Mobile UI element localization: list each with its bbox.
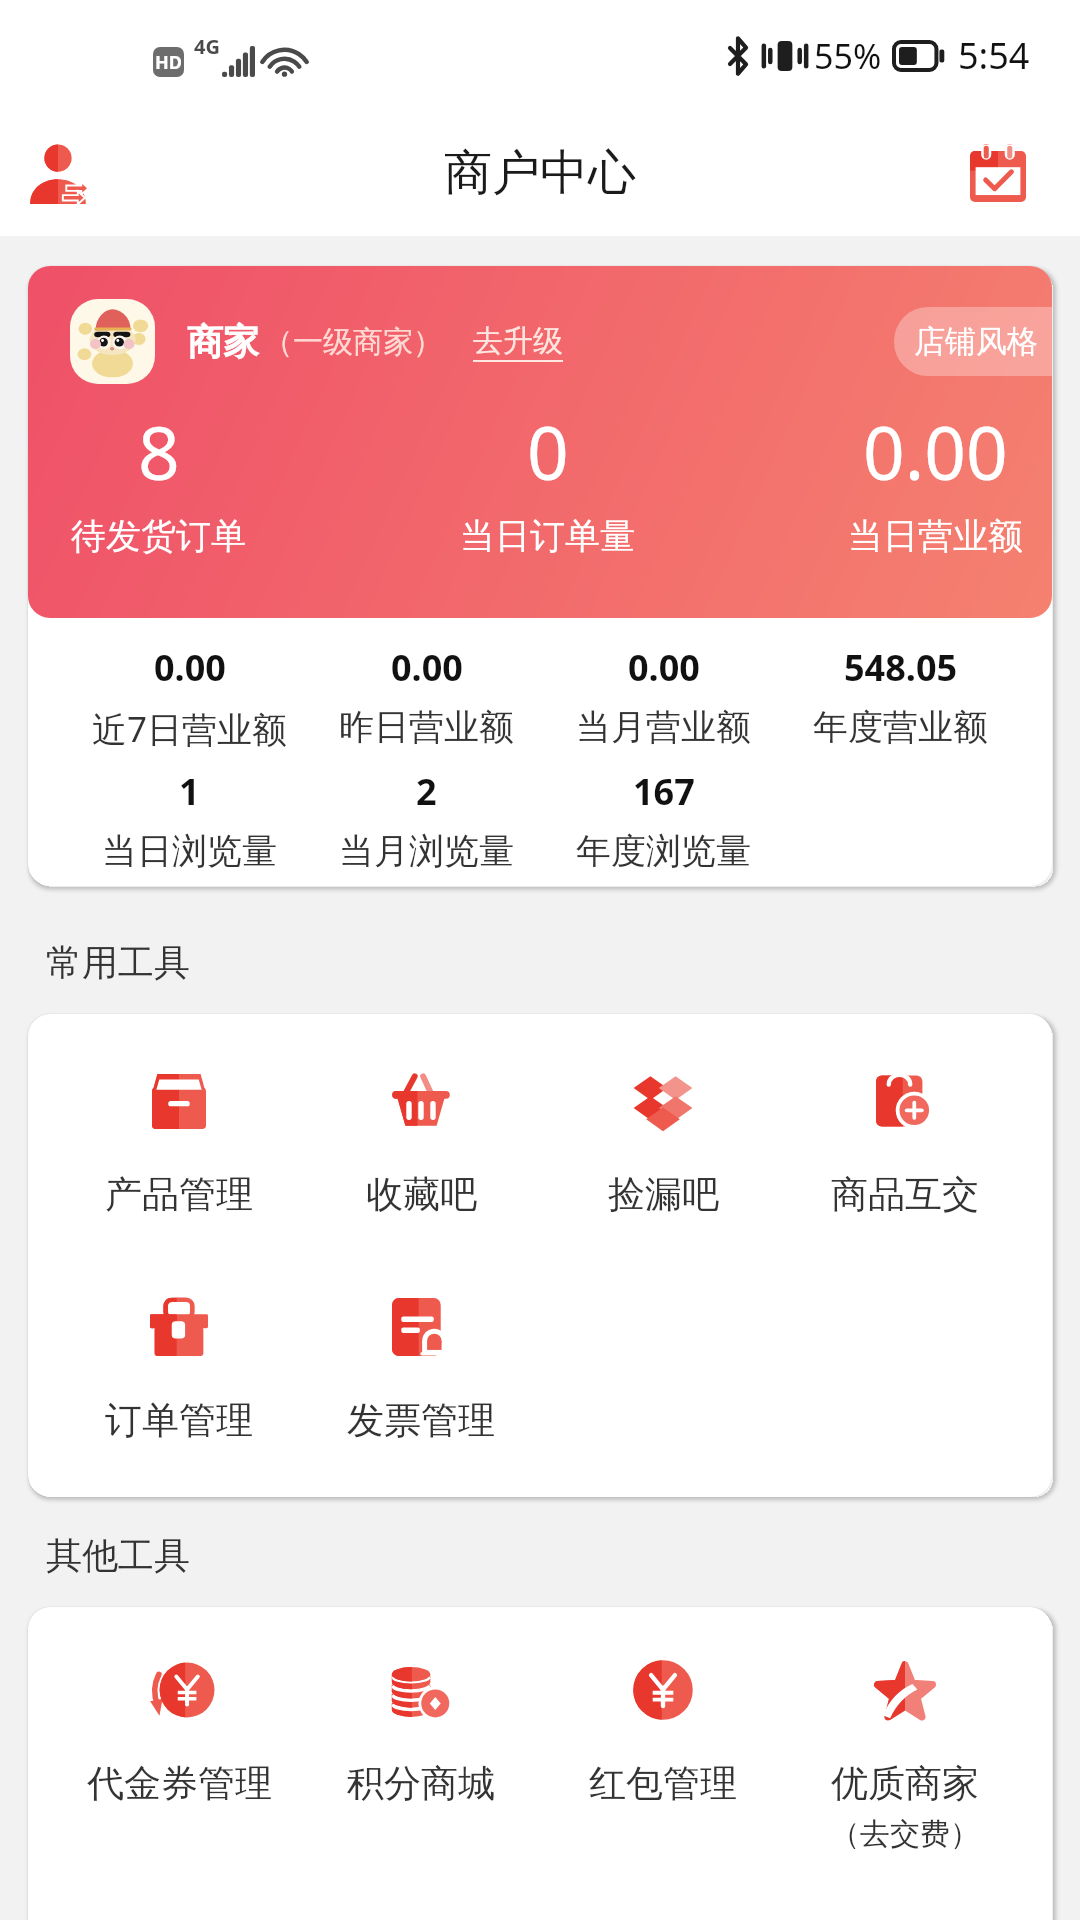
staticText: 当月营业额 xyxy=(576,705,751,749)
staticText: 优质商家 xyxy=(831,1760,979,1807)
button[interactable]: 1 xyxy=(71,767,308,873)
staticText: 167 xyxy=(633,767,695,816)
staticText: 4G xyxy=(194,33,220,60)
button[interactable]: Calendar xyxy=(940,115,1056,231)
button[interactable]: Avatar xyxy=(70,299,155,384)
staticText: 积分商城 xyxy=(347,1760,495,1807)
staticText: 0 xyxy=(527,402,569,501)
staticText: 8 xyxy=(138,402,180,501)
button[interactable]: 0 xyxy=(460,402,635,558)
button[interactable]: 收藏吧 xyxy=(300,1070,542,1218)
button[interactable]: 店铺风格 xyxy=(894,307,1052,376)
button[interactable]: 商家 xyxy=(187,319,443,364)
button[interactable]: Switch account xyxy=(0,115,116,231)
staticText: 常用工具 xyxy=(46,940,190,985)
staticText: 商家 xyxy=(187,319,259,364)
staticText: 商户中心 xyxy=(444,143,636,203)
staticText: 548.05 xyxy=(844,643,958,692)
button[interactable]: 积分商城 xyxy=(300,1659,542,1807)
button[interactable]: 0.00 xyxy=(308,643,545,749)
staticText: 55% xyxy=(814,33,882,79)
staticText: 0.00 xyxy=(154,643,226,692)
staticText: 产品管理 xyxy=(105,1171,253,1218)
staticText: 订单管理 xyxy=(105,1397,253,1444)
staticText: 商品互交 xyxy=(831,1171,979,1218)
button[interactable]: 产品管理 xyxy=(58,1070,300,1218)
button[interactable]: 0.00 xyxy=(545,643,782,749)
button[interactable]: 0.00 xyxy=(848,402,1023,558)
button[interactable]: 优质商家 xyxy=(784,1659,1026,1853)
staticText: 1 xyxy=(179,767,200,816)
staticText: 0.00 xyxy=(863,402,1008,501)
button[interactable]: 2 xyxy=(308,767,545,873)
staticText: 其他工具 xyxy=(46,1533,190,1578)
staticText: 当日订单量 xyxy=(460,514,635,558)
staticText: 红包管理 xyxy=(589,1760,737,1807)
staticText: 当日营业额 xyxy=(848,514,1023,558)
button[interactable]: 红包管理 xyxy=(542,1659,784,1807)
staticText: 代金券管理 xyxy=(87,1760,272,1807)
staticText: 年度营业额 xyxy=(813,705,988,749)
staticText: 去升级 xyxy=(473,322,563,360)
staticText: 店铺风格 xyxy=(914,322,1038,361)
button[interactable]: 代金券管理 xyxy=(58,1659,300,1807)
staticText: HD xyxy=(155,50,182,75)
button[interactable]: 商品互交 xyxy=(784,1070,1026,1218)
staticText: 捡漏吧 xyxy=(608,1171,719,1218)
staticText: 0.00 xyxy=(391,643,463,692)
button[interactable]: 548.05 xyxy=(782,643,1019,749)
staticText: 近7日营业额 xyxy=(92,705,288,753)
staticText: 当日浏览量 xyxy=(102,829,277,873)
button[interactable]: 捡漏吧 xyxy=(542,1070,784,1218)
staticText: 0.00 xyxy=(628,643,700,692)
staticText: 待发货订单 xyxy=(71,514,246,558)
staticText: 年度浏览量 xyxy=(576,829,751,873)
button[interactable]: 订单管理 xyxy=(58,1296,300,1444)
staticText: （一级商家） xyxy=(263,323,443,361)
button[interactable]: 167 xyxy=(545,767,782,873)
button[interactable]: 8 xyxy=(71,402,246,558)
button[interactable]: 0.00 xyxy=(71,643,308,753)
staticText: 收藏吧 xyxy=(366,1171,477,1218)
staticText: （去交费） xyxy=(830,1815,980,1853)
button[interactable]: 去升级 xyxy=(473,322,563,362)
staticText: 2 xyxy=(416,767,437,816)
staticText: 5:54 xyxy=(958,31,1030,80)
staticText: 昨日营业额 xyxy=(339,705,514,749)
staticText: 发票管理 xyxy=(347,1397,495,1444)
button[interactable]: 发票管理 xyxy=(300,1296,542,1444)
staticText: 当月浏览量 xyxy=(339,829,514,873)
